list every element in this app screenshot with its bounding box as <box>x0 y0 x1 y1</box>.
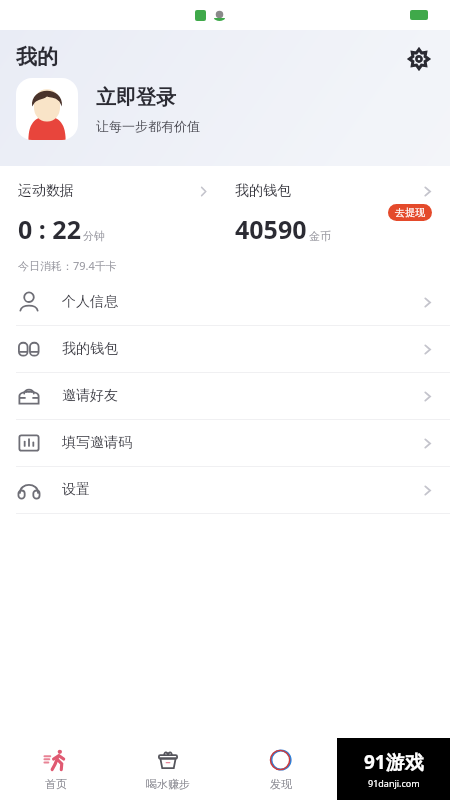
staticText: 我的钱包 <box>62 340 118 358</box>
staticText: 个人信息 <box>62 293 118 311</box>
staticText: 填写邀请码 <box>62 434 132 452</box>
staticText: 我的 <box>16 44 58 70</box>
staticText: 91danji.com <box>368 777 420 789</box>
staticText: 首页 <box>45 777 67 791</box>
button[interactable]: 设置 <box>0 467 450 513</box>
button[interactable]: Settings <box>400 40 438 78</box>
button[interactable]: 填写邀请码 <box>0 420 450 466</box>
staticText: 我的钱包 <box>235 182 291 200</box>
staticText: 金币 <box>309 229 331 243</box>
button[interactable]: 邀请好友 <box>0 373 450 419</box>
staticText: 让每一步都有价值 <box>96 118 200 134</box>
staticText: 分钟 <box>83 229 105 243</box>
button[interactable]: 我的钱包 <box>0 326 450 372</box>
staticText: 喝水赚步 <box>146 777 190 791</box>
staticText: 40590 <box>235 212 307 246</box>
button[interactable]: 个人信息 <box>0 279 450 325</box>
button[interactable]: 首页 <box>0 738 112 800</box>
button[interactable]: 喝水赚步 <box>112 738 224 800</box>
staticText: 去提现 <box>395 206 425 219</box>
button[interactable]: 我的钱包 <box>225 166 450 273</box>
button[interactable]: 去提现 <box>388 204 432 221</box>
button[interactable]: 运动数据 <box>0 166 225 273</box>
staticText: 今日消耗：79.4千卡 <box>18 258 117 273</box>
staticText: 0 : 22 <box>18 212 81 246</box>
staticText: 发现 <box>270 777 292 791</box>
staticText: 设置 <box>62 481 90 499</box>
button[interactable]: 发现 <box>224 738 337 800</box>
button[interactable]: 立即登录 <box>16 78 200 140</box>
staticText: 邀请好友 <box>62 387 118 405</box>
staticText: 91游戏 <box>364 749 424 775</box>
staticText: 立即登录 <box>96 85 176 110</box>
staticText: 运动数据 <box>18 182 74 200</box>
